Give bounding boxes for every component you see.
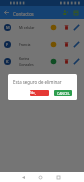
button[interactable]: Delete: [61, 56, 72, 67]
button[interactable]: K: [0, 53, 84, 70]
button[interactable]: Edit: [71, 56, 82, 67]
staticText: Karina: [19, 56, 30, 61]
button[interactable]: Delete: [61, 39, 72, 50]
staticText: M: [6, 25, 10, 30]
button[interactable]: Add contact: [61, 6, 70, 19]
staticText: No, Retornar: [30, 90, 49, 96]
staticText: Esta seguro de eliminar: [13, 79, 62, 85]
button[interactable]: No, Retornar: [30, 90, 49, 96]
staticText: F: [6, 42, 9, 47]
button[interactable]: Call: [48, 39, 59, 50]
button[interactable]: Back: [18, 172, 28, 182]
button[interactable]: Home: [35, 172, 45, 182]
staticText: Francia: [19, 42, 31, 47]
button[interactable]: Delete: [61, 22, 72, 33]
button[interactable]: Recents: [53, 172, 63, 182]
button[interactable]: Call: [48, 22, 59, 33]
staticText: CANCEL: [57, 91, 70, 96]
staticText: Contactos: [13, 11, 34, 17]
button[interactable]: Back: [1, 6, 12, 19]
button[interactable]: Edit: [71, 39, 82, 50]
staticText: K: [6, 59, 9, 64]
staticText: Gonzales: [19, 62, 34, 67]
button[interactable]: More options: [71, 6, 80, 19]
button[interactable]: Edit: [71, 22, 82, 33]
button[interactable]: F: [0, 36, 84, 53]
staticText: Mi celular: [19, 25, 35, 30]
button[interactable]: Call: [48, 56, 59, 67]
button[interactable]: CANCEL: [54, 90, 72, 96]
button[interactable]: M: [0, 19, 84, 36]
